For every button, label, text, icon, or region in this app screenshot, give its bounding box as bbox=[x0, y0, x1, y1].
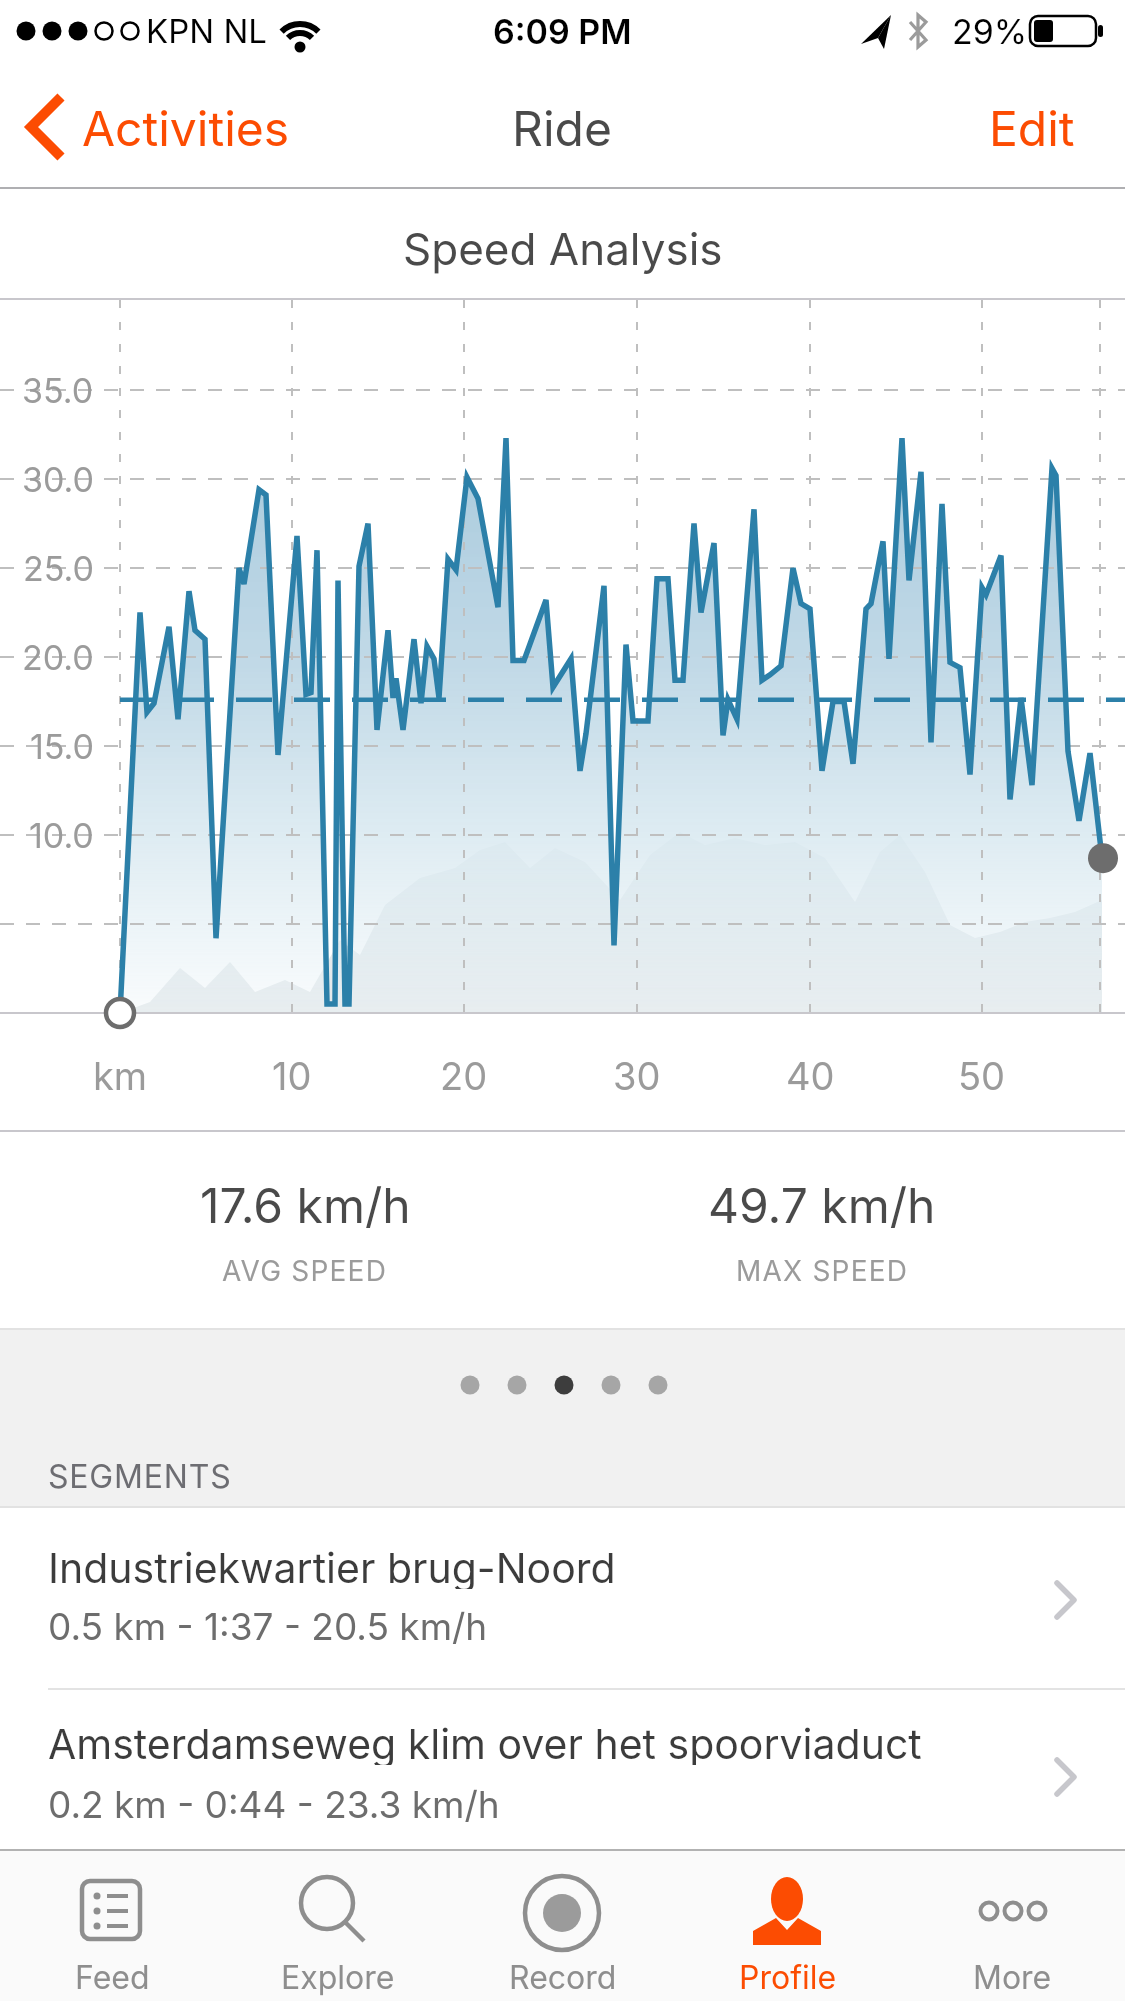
button[interactable] bbox=[955, 90, 1085, 165]
button[interactable] bbox=[20, 90, 300, 165]
staticText: 20.0 bbox=[22, 637, 94, 678]
staticText: 49.7 km/h bbox=[708, 1176, 936, 1234]
staticText: 0.2 km - 0:44 - 23.3 km/h bbox=[48, 1782, 500, 1824]
staticText: Activities bbox=[82, 99, 290, 157]
button[interactable] bbox=[225, 1851, 450, 2001]
button[interactable] bbox=[0, 1851, 225, 2001]
staticText: 6:09 PM bbox=[493, 11, 632, 52]
staticText: Explore bbox=[281, 1958, 395, 1997]
staticText: 30 bbox=[613, 1053, 661, 1097]
staticText: Profile bbox=[739, 1958, 837, 1997]
staticText: Feed bbox=[75, 1958, 150, 1997]
staticText: Ride bbox=[512, 99, 612, 157]
staticText: 29% bbox=[952, 11, 1028, 52]
staticText: Record bbox=[509, 1958, 617, 1997]
button[interactable] bbox=[0, 1508, 1125, 1689]
staticText: MAX SPEED bbox=[736, 1254, 909, 1288]
staticText: KPN NL bbox=[146, 11, 267, 51]
button[interactable] bbox=[900, 1851, 1125, 2001]
staticText: 15.0 bbox=[30, 726, 94, 767]
staticText: km bbox=[93, 1053, 148, 1097]
staticText: 35.0 bbox=[22, 370, 94, 411]
staticText: 10 bbox=[272, 1053, 312, 1097]
staticText: 50 bbox=[958, 1053, 1006, 1097]
staticText: 20 bbox=[440, 1053, 488, 1097]
staticText: Industriekwartier brug-Noord bbox=[48, 1543, 616, 1589]
staticText: 25.0 bbox=[23, 548, 94, 589]
staticText: Speed Analysis bbox=[403, 222, 723, 274]
staticText: 30.0 bbox=[22, 459, 94, 500]
staticText: AVG SPEED bbox=[222, 1254, 388, 1288]
button[interactable] bbox=[675, 1851, 900, 2001]
staticText: 17.6 km/h bbox=[200, 1176, 411, 1234]
staticText: SEGMENTS bbox=[48, 1457, 232, 1496]
staticText: 0.5 km - 1:37 - 20.5 km/h bbox=[48, 1604, 488, 1646]
button[interactable] bbox=[0, 1690, 1125, 1850]
staticText: Edit bbox=[989, 99, 1075, 157]
button[interactable] bbox=[450, 1851, 675, 2001]
staticText: Amsterdamseweg klim over het spoorviaduc… bbox=[48, 1719, 922, 1765]
staticText: 40 bbox=[786, 1053, 835, 1097]
staticText: More bbox=[973, 1958, 1052, 1997]
staticText: 10.0 bbox=[29, 815, 94, 856]
